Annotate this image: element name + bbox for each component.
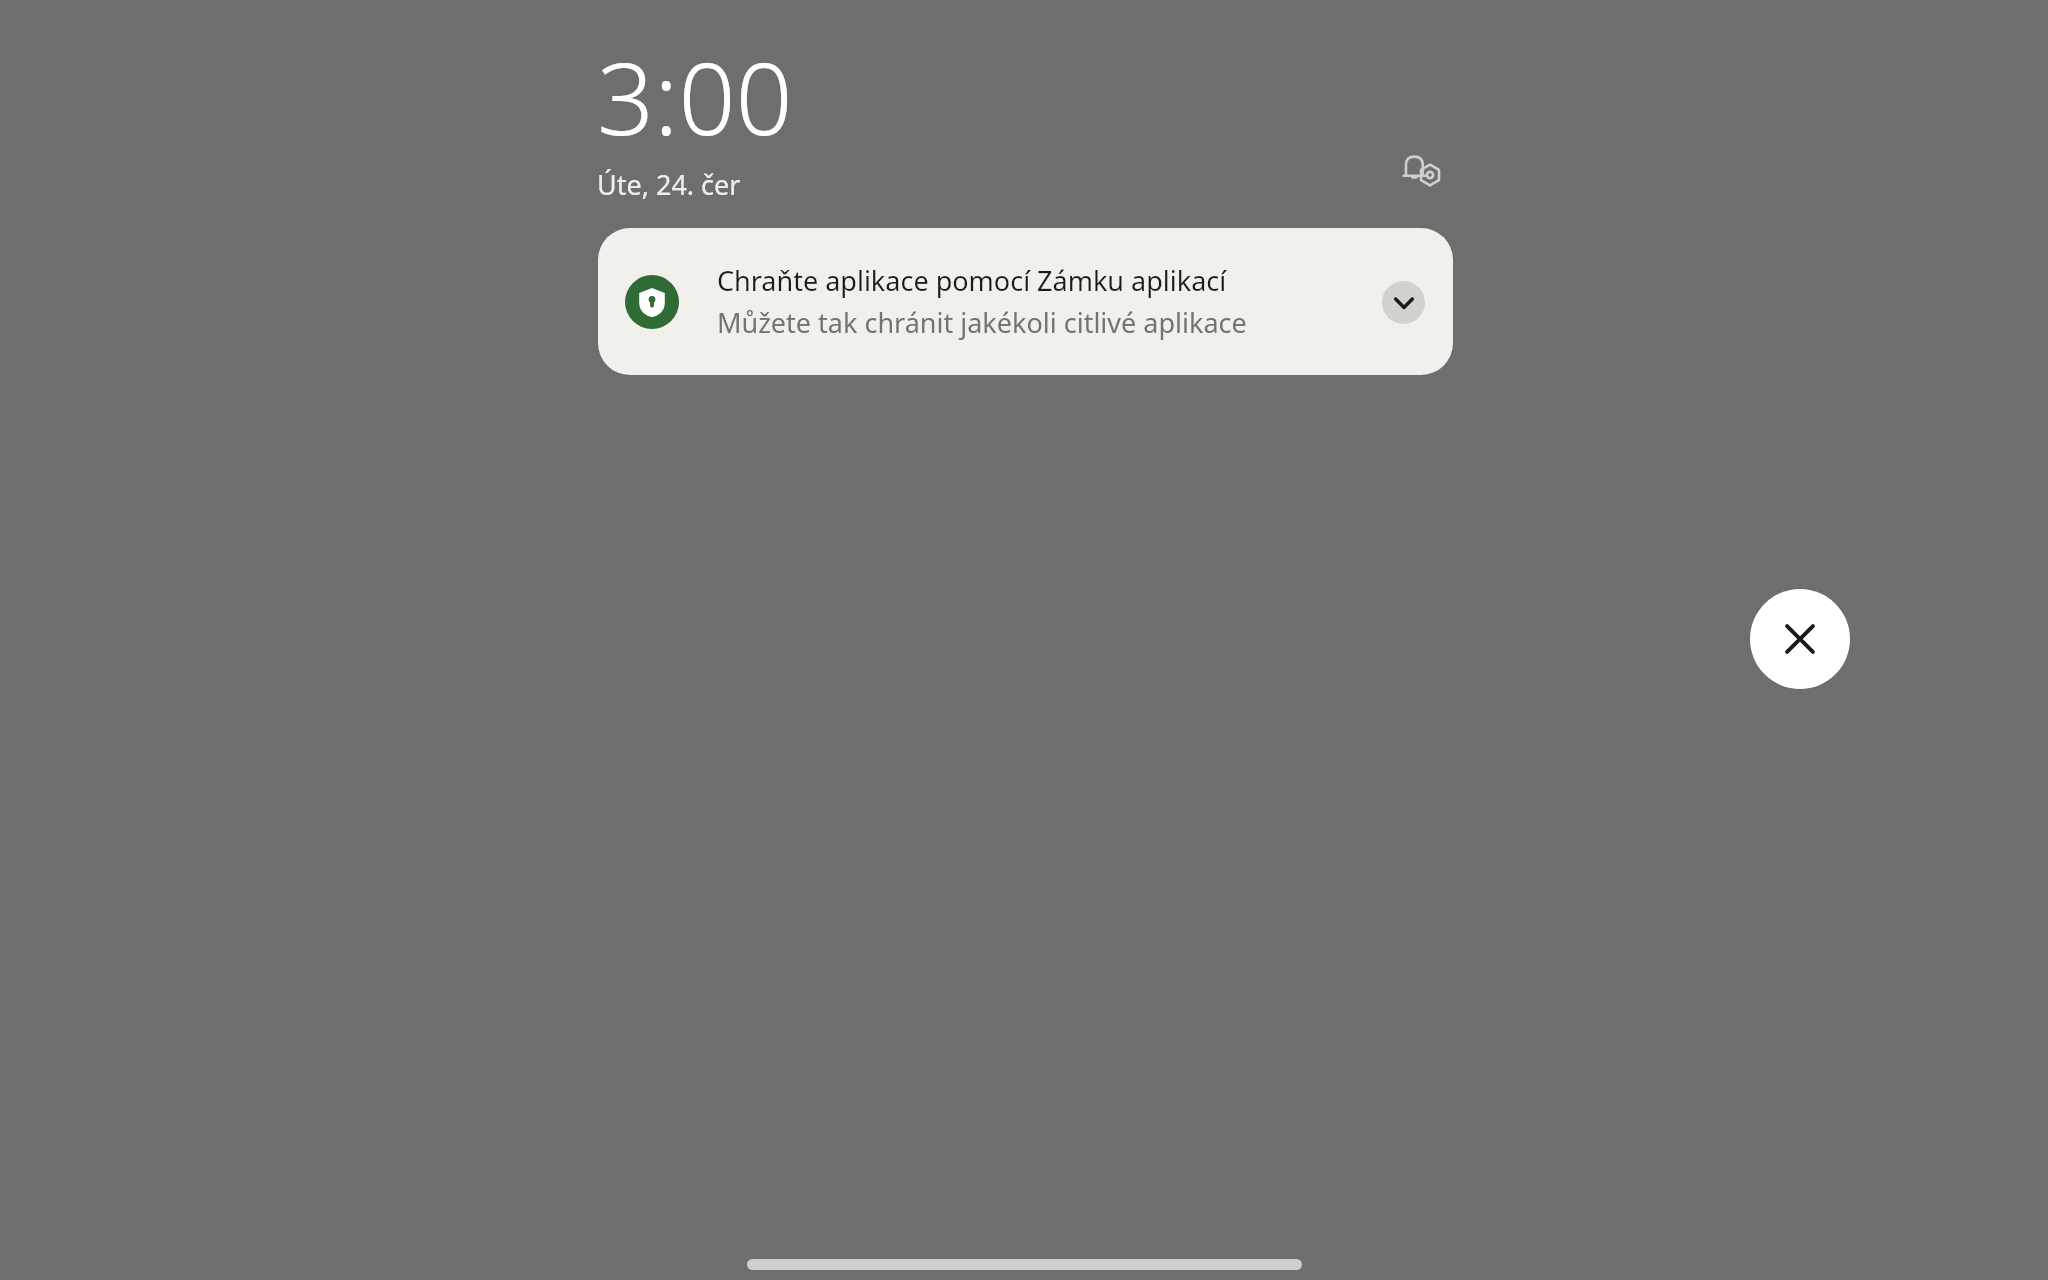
staticText: Můžete tak chránit jakékoli citlivé apli…: [717, 304, 1247, 341]
staticText: Úte, 24. čer: [597, 166, 741, 203]
staticText: Chraňte aplikace pomocí Zámku aplikací: [717, 262, 1227, 299]
button[interactable]: Chraňte aplikace pomocí Zámku aplikací: [598, 228, 1453, 375]
button[interactable]: Notification settings: [1390, 139, 1454, 203]
staticText: 3:00: [597, 28, 793, 164]
button[interactable]: Close: [1750, 589, 1850, 689]
button[interactable]: Expand notification: [1375, 274, 1431, 330]
